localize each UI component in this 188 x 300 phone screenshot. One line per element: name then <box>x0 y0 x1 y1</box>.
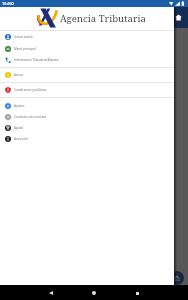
button[interactable]: Inicio <box>87 286 101 300</box>
button[interactable]: Inicio <box>172 11 185 24</box>
staticText: Condiciones y políticas <box>14 88 47 92</box>
button[interactable]: Recientes <box>130 286 144 300</box>
button[interactable]: Menú principal <box>0 43 174 54</box>
staticText: 10:46 <box>2 1 12 6</box>
staticText: Información Tributaria/Aduana <box>14 58 59 62</box>
button[interactable]: Ajustes <box>0 100 174 111</box>
button[interactable]: Información Tributaria/Aduana <box>0 54 174 65</box>
button[interactable]: Iniciar sesión <box>0 31 174 42</box>
button[interactable]: Atrás <box>44 286 58 300</box>
staticText: Acerca de <box>14 137 28 141</box>
button[interactable]: Acción <box>170 271 184 285</box>
staticText: Iniciar sesión <box>14 35 33 39</box>
button[interactable]: Contacta con nosotros <box>0 111 174 122</box>
staticText: Ayuda <box>14 126 23 130</box>
staticText: Contacta con nosotros <box>14 115 47 119</box>
staticText: Ajustes <box>14 104 25 108</box>
button[interactable]: Avisos <box>0 69 174 80</box>
staticText: Agencia Tributaria <box>60 12 146 25</box>
staticText: Avisos <box>14 73 24 77</box>
button[interactable]: Acerca de <box>0 133 174 144</box>
staticText: Menú principal <box>14 47 36 51</box>
button[interactable]: Ayuda <box>0 122 174 133</box>
button[interactable]: Condiciones y políticas <box>0 84 174 95</box>
